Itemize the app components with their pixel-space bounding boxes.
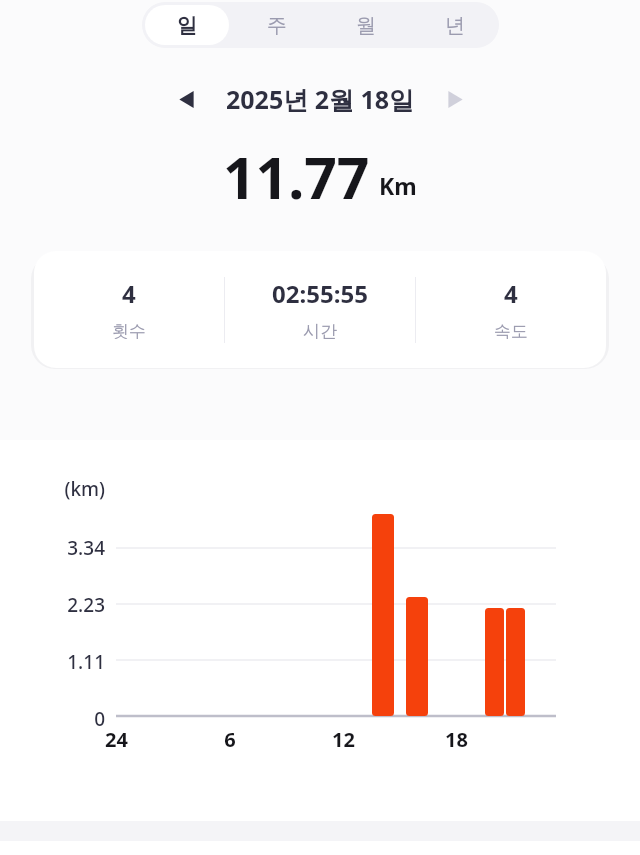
- staticText: 1.11: [67, 649, 105, 675]
- staticText: 주: [267, 13, 287, 38]
- button[interactable]: 일: [145, 5, 229, 45]
- staticText: Km: [379, 170, 417, 201]
- button[interactable]: 4: [416, 251, 606, 368]
- staticText: 3.34: [67, 535, 105, 561]
- staticText: 년: [445, 13, 465, 38]
- staticText: 4: [504, 277, 518, 310]
- button[interactable]: 월: [324, 5, 407, 45]
- staticText: 11.77: [223, 138, 370, 208]
- button[interactable]: Previous day: [164, 77, 208, 121]
- staticText: 02:55:55: [272, 277, 368, 310]
- staticText: 횟수: [112, 321, 146, 342]
- staticText: 월: [356, 13, 376, 38]
- button[interactable]: 4: [34, 251, 224, 368]
- staticText: 시간: [303, 321, 337, 342]
- staticText: 4: [122, 277, 136, 310]
- staticText: 2.23: [67, 592, 105, 618]
- staticText: 12: [332, 726, 355, 753]
- button[interactable]: Next day: [433, 77, 477, 121]
- staticText: 18: [445, 726, 468, 753]
- button[interactable]: 년: [413, 5, 496, 45]
- button[interactable]: 02:55:55: [225, 251, 415, 368]
- staticText: 0: [94, 706, 105, 732]
- staticText: 24: [105, 726, 128, 753]
- staticText: 일: [177, 13, 197, 38]
- staticText: 속도: [494, 321, 528, 342]
- staticText: (km): [64, 476, 105, 502]
- button[interactable]: 주: [235, 5, 318, 45]
- staticText: 6: [224, 726, 236, 753]
- staticText: 2025년 2월 18일: [226, 82, 415, 116]
